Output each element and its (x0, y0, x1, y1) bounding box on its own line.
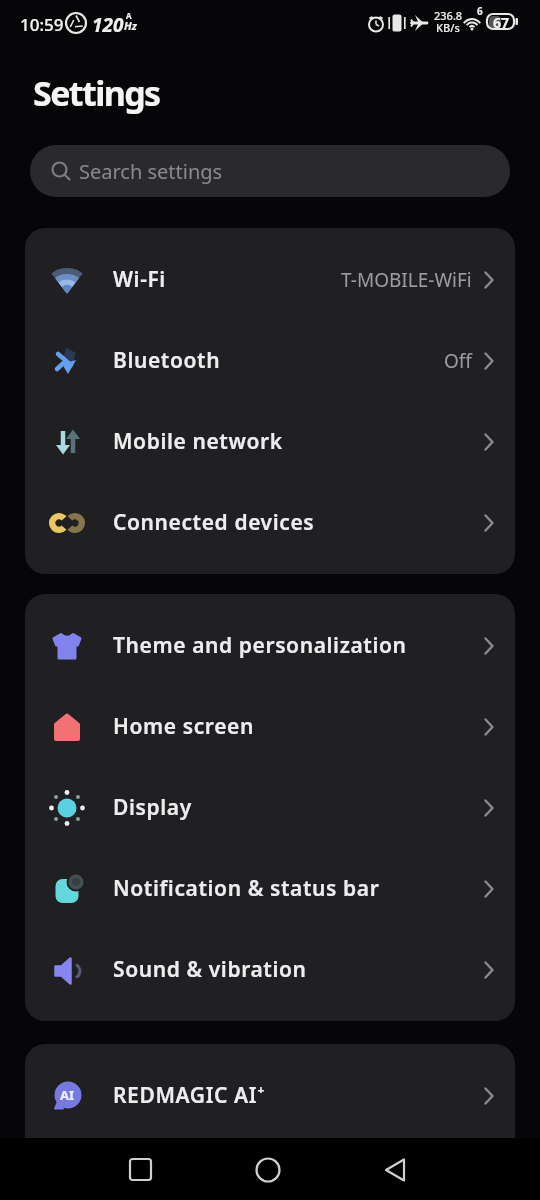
staticText: Theme and personalization (113, 631, 407, 660)
staticText: Sound & vibration (113, 955, 307, 984)
staticText: 6 (477, 4, 483, 18)
staticText: 236.8 (434, 8, 463, 23)
staticText: KB/s (436, 20, 460, 35)
staticText: Bluetooth (113, 346, 221, 375)
staticText: T-MOBILE-WiFi (341, 267, 472, 293)
staticText: Settings (33, 70, 160, 116)
staticText: 120 (92, 12, 124, 38)
staticText: REDMAGIC AI⁺ (113, 1081, 266, 1110)
staticText: Search settings (79, 158, 223, 185)
staticText: AI (60, 1086, 75, 1104)
staticText: Display (113, 793, 192, 822)
staticText: A (126, 10, 132, 21)
staticText: Mobile network (113, 427, 283, 456)
staticText: Connected devices (113, 508, 315, 537)
staticText: Off (444, 348, 472, 374)
staticText: Hz (124, 18, 137, 33)
staticText: Notification & status bar (113, 874, 380, 903)
staticText: Home screen (113, 712, 254, 741)
staticText: 10:59 (20, 13, 64, 36)
staticText: 67 (493, 13, 510, 32)
staticText: Wi-Fi (113, 265, 166, 294)
